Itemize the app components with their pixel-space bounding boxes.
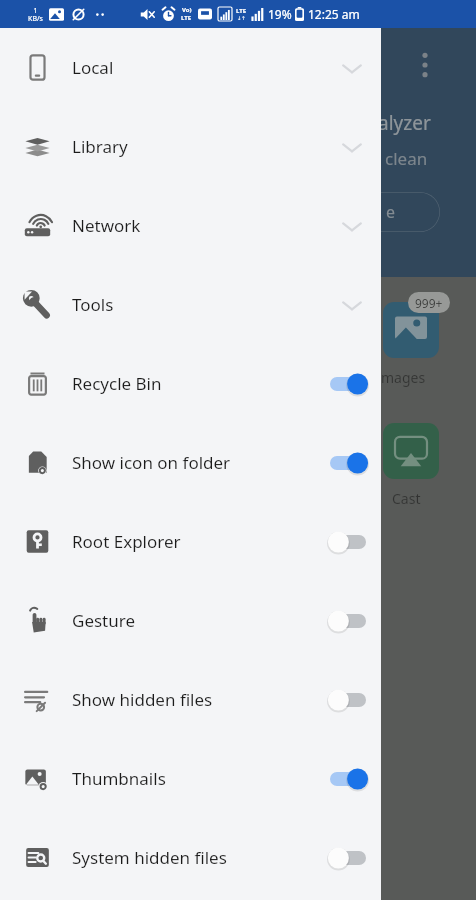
button[interactable]: Cast — [383, 423, 439, 479]
staticText: Show icon on folder — [72, 451, 322, 474]
button[interactable]: Local — [0, 28, 381, 107]
staticText: mages — [381, 368, 426, 387]
staticText: 12:25 am — [308, 6, 360, 22]
staticText: Vo) — [182, 6, 192, 14]
staticText: alyzer — [378, 110, 431, 136]
staticText: 999+ — [415, 295, 443, 311]
staticText: Network — [72, 214, 339, 237]
staticText: Local — [72, 56, 339, 79]
staticText: LTE — [181, 14, 192, 22]
staticText: Thumbnails — [72, 767, 322, 790]
button[interactable]: System hidden files — [0, 818, 381, 897]
staticText: Root Explorer — [72, 530, 322, 553]
staticText: ↓↑ — [237, 15, 246, 21]
button[interactable]: Library — [0, 107, 381, 186]
button[interactable]: Tools — [0, 265, 381, 344]
staticText: Show hidden files — [72, 688, 322, 711]
staticText: Gesture — [72, 609, 322, 632]
button[interactable]: Network — [0, 186, 381, 265]
staticText: clean — [385, 147, 428, 170]
staticText: Tools — [72, 293, 339, 316]
button[interactable]: More options — [411, 44, 439, 86]
staticText: Recycle Bin — [72, 372, 322, 395]
button[interactable]: Show icon on folder — [0, 423, 381, 502]
staticText: 19% — [268, 6, 292, 22]
staticText: 1 KB/s — [28, 6, 43, 23]
staticText: e — [386, 201, 396, 223]
button[interactable]: Gesture — [0, 581, 381, 660]
button[interactable]: Show hidden files — [0, 660, 381, 739]
button[interactable]: Images — [383, 302, 439, 358]
staticText: Cast — [392, 489, 421, 508]
staticText: System hidden files — [72, 846, 322, 869]
button[interactable]: Thumbnails — [0, 739, 381, 818]
button[interactable]: Recycle Bin — [0, 344, 381, 423]
button[interactable]: Root Explorer — [0, 502, 381, 581]
staticText: LTE — [236, 7, 247, 15]
button[interactable]: e — [330, 192, 440, 232]
staticText: Library — [72, 135, 339, 158]
